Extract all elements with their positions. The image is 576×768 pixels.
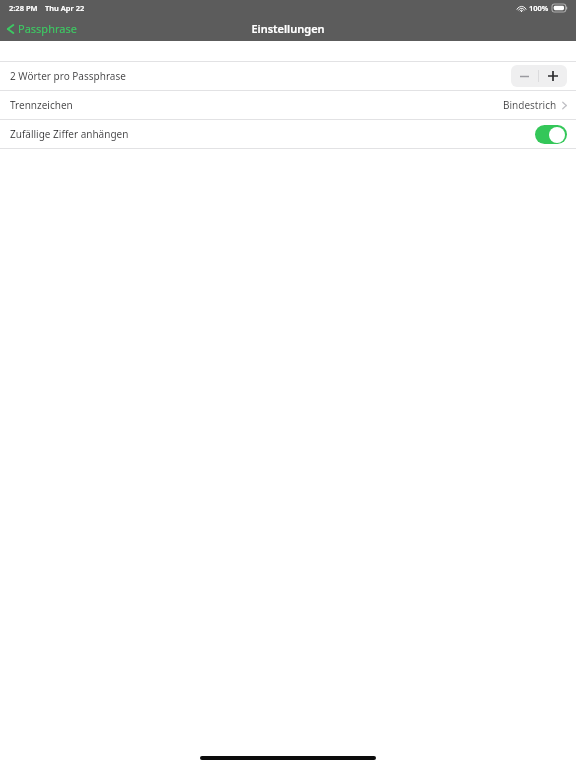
- button[interactable]: Passphrase: [0, 16, 87, 41]
- staticText: 2:28 PM: [9, 3, 38, 13]
- staticText: Trennzeichen: [10, 98, 73, 112]
- button[interactable]: Zufällige Ziffer anhängen toggle: [535, 125, 567, 144]
- staticText: Thu Apr 22: [45, 3, 85, 13]
- button[interactable]: Decrease word count: [511, 65, 538, 87]
- button[interactable]: Trennzeichen: [0, 91, 576, 119]
- staticText: 2 Wörter pro Passphrase: [10, 69, 126, 83]
- staticText: Zufällige Ziffer anhängen: [10, 127, 129, 141]
- staticText: Einstellungen: [251, 21, 325, 36]
- button[interactable]: 2 Wörter pro Passphrase: [0, 62, 576, 90]
- staticText: 100%: [529, 3, 549, 13]
- staticText: Passphrase: [18, 21, 77, 36]
- button[interactable]: Increase word count: [539, 65, 567, 87]
- button[interactable]: Zufällige Ziffer anhängen: [0, 120, 576, 148]
- staticText: Bindestrich: [503, 98, 557, 112]
